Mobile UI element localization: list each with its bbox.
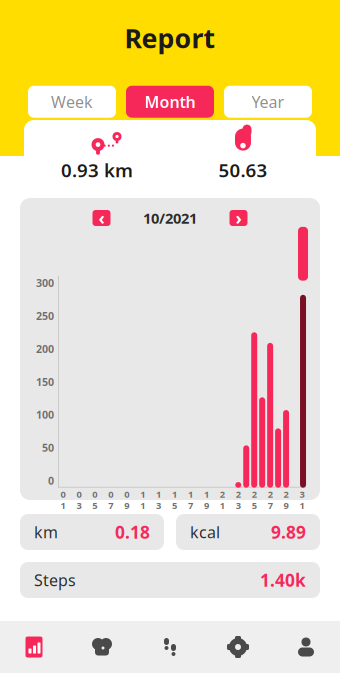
button[interactable]: Steps <box>136 621 204 673</box>
button[interactable]: Profile <box>272 621 340 673</box>
staticText: 100 <box>36 408 54 422</box>
staticText: 0.18 <box>115 520 150 543</box>
button[interactable]: Week <box>28 86 116 118</box>
staticText: 2 <box>236 488 241 500</box>
staticText: 50.63 <box>218 158 267 182</box>
staticText: 2 <box>252 488 257 500</box>
staticText: 1 <box>172 488 177 500</box>
button[interactable]: Previous month <box>92 210 110 226</box>
staticText: 0 <box>48 474 54 488</box>
staticText: 200 <box>36 342 54 356</box>
staticText: 0 <box>92 488 97 500</box>
staticText: 0 <box>108 488 113 500</box>
button[interactable]: Report <box>0 621 68 673</box>
button[interactable]: Month <box>126 86 214 118</box>
staticText: 1 <box>60 499 65 512</box>
staticText: 1 <box>188 488 193 500</box>
staticText: km <box>34 521 58 543</box>
button[interactable]: Settings <box>204 621 272 673</box>
staticText: 3 <box>236 499 241 512</box>
staticText: 50 <box>42 441 54 455</box>
staticText: 7 <box>268 499 273 512</box>
button[interactable]: Steps <box>20 562 320 598</box>
staticText: 2 <box>220 488 225 500</box>
staticText: 1.40k <box>260 568 306 591</box>
button[interactable]: Next month <box>229 210 247 226</box>
staticText: 300 <box>36 276 54 290</box>
staticText: ‹ <box>98 206 104 229</box>
staticText: 1 <box>299 499 304 512</box>
button[interactable]: Heart rate <box>68 621 136 673</box>
button[interactable]: km <box>20 514 164 550</box>
staticText: 150 <box>36 375 54 389</box>
staticText: 9 <box>284 499 289 512</box>
staticText: 3 <box>156 499 161 512</box>
staticText: 0 <box>60 488 65 500</box>
staticText: Report <box>124 20 215 56</box>
staticText: 2 <box>284 488 289 500</box>
button[interactable]: Year <box>224 86 312 118</box>
staticText: 0 <box>76 488 81 500</box>
staticText: Month <box>144 91 195 112</box>
staticText: 3 <box>299 488 304 500</box>
staticText: 10/2021 <box>143 208 197 228</box>
staticText: 0 <box>124 488 129 500</box>
staticText: Steps <box>34 569 76 591</box>
staticText: 2 <box>268 488 273 500</box>
staticText: Week <box>51 91 93 112</box>
staticText: 1 <box>140 499 145 512</box>
staticText: 3 <box>76 499 81 512</box>
staticText: 1 <box>220 499 225 512</box>
staticText: 5 <box>252 499 257 512</box>
staticText: Year <box>251 91 284 112</box>
staticText: 5 <box>92 499 97 512</box>
staticText: 1 <box>156 488 161 500</box>
staticText: 5 <box>172 499 177 512</box>
staticText: 1 <box>140 488 145 500</box>
staticText: 9 <box>204 499 209 512</box>
staticText: 1 <box>204 488 209 500</box>
staticText: kcal <box>190 521 220 543</box>
staticText: 0.93 km <box>61 158 133 182</box>
staticText: 9 <box>124 499 129 512</box>
staticText: 9.89 <box>271 520 306 543</box>
staticText: 7 <box>108 499 113 512</box>
staticText: 250 <box>36 309 54 323</box>
button[interactable]: kcal <box>176 514 320 550</box>
staticText: 7 <box>188 499 193 512</box>
staticText: › <box>235 206 241 229</box>
